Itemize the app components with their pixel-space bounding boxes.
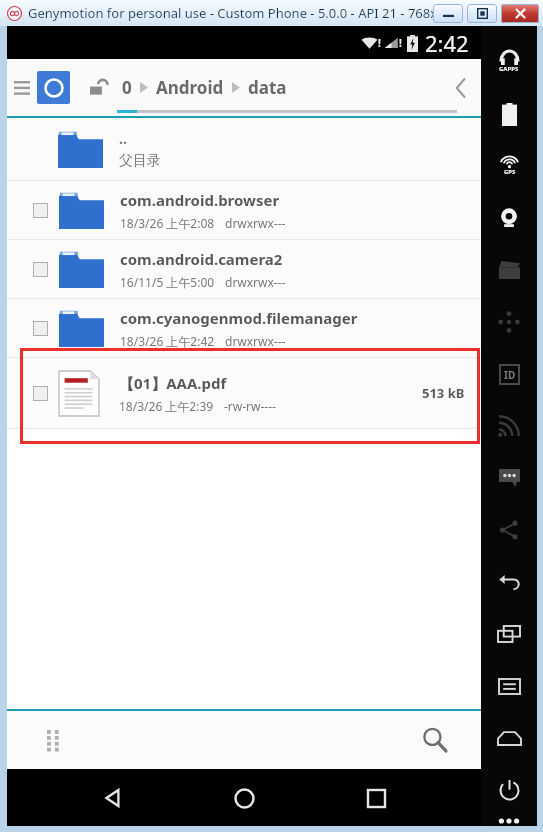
staticText: com.android.browser	[120, 190, 280, 210]
staticText: drwxrwx---	[225, 215, 286, 231]
button[interactable]: Back	[85, 771, 139, 825]
staticText: 18/3/26 上午2:39	[119, 398, 214, 414]
staticText: 18/3/26 上午2:08	[120, 215, 215, 231]
button[interactable]: Windows	[483, 608, 535, 660]
button[interactable]: Camera	[483, 192, 535, 244]
button[interactable]: Dpad	[483, 296, 535, 348]
button[interactable]: Recents	[349, 771, 403, 825]
button[interactable]: Minimize	[433, 4, 463, 23]
button[interactable]: Select com.cyanogenmod.filemanager	[7, 299, 481, 358]
button[interactable]: Reorder	[40, 727, 66, 753]
button[interactable]: GPS	[483, 140, 535, 192]
staticText: 513 kB	[422, 384, 465, 402]
staticText: 0	[122, 76, 132, 99]
button[interactable]: Select com.android.browser	[33, 203, 48, 218]
button[interactable]: Select com.cyanogenmod.filemanager	[33, 321, 48, 336]
staticText: -rw-rw----	[224, 398, 276, 414]
staticText: com.android.camera2	[120, 249, 283, 269]
staticText: Android	[156, 76, 224, 99]
staticText: drwxrwx---	[225, 333, 286, 349]
staticText: !	[378, 36, 381, 50]
button[interactable]: Disk	[483, 712, 535, 764]
staticText: GPS	[504, 168, 516, 176]
button[interactable]: Back	[483, 556, 535, 608]
button[interactable]: Select 【01】AAA.pdf	[7, 358, 481, 429]
staticText: !	[399, 36, 402, 50]
button[interactable]: GAPPS	[483, 36, 535, 88]
button[interactable]: Select com.android.camera2	[33, 262, 48, 277]
button[interactable]: App icon	[37, 71, 70, 104]
staticText: drwxrwx---	[225, 274, 286, 290]
button[interactable]: Menu	[7, 68, 37, 108]
button[interactable]: More	[483, 816, 535, 826]
button[interactable]: Share	[483, 504, 535, 556]
button[interactable]: Home	[217, 771, 271, 825]
staticText: 2:42	[425, 28, 469, 58]
staticText: 18/3/26 上午2:42	[120, 333, 215, 349]
staticText: ..	[119, 129, 127, 148]
staticText: 父目录	[119, 152, 161, 170]
staticText: ID	[504, 368, 516, 382]
staticText: com.cyanogenmod.filemanager	[120, 308, 358, 328]
button[interactable]: Identifiers	[483, 348, 535, 400]
button[interactable]: Messages	[483, 452, 535, 504]
button[interactable]: Search	[415, 720, 455, 760]
staticText: GAPPS	[499, 65, 519, 73]
staticText: 16/11/5 上午5:00	[120, 274, 215, 290]
button[interactable]: Maximize	[467, 4, 497, 23]
button[interactable]: Close	[501, 4, 539, 23]
staticText: data	[248, 76, 287, 99]
button[interactable]: Video	[483, 244, 535, 296]
button[interactable]: Battery	[483, 88, 535, 140]
button[interactable]: Select com.android.camera2	[7, 240, 481, 299]
staticText: 【01】AAA.pdf	[119, 373, 227, 393]
button[interactable]: Select 【01】AAA.pdf	[33, 386, 48, 401]
button[interactable]: Power	[483, 764, 535, 816]
staticText: Genymotion for personal use - Custom Pho…	[28, 4, 448, 22]
button[interactable]: Network	[483, 400, 535, 452]
button[interactable]: Back	[441, 68, 481, 108]
button[interactable]: ..	[7, 118, 481, 181]
button[interactable]: Unlock	[86, 75, 112, 101]
button[interactable]: Select com.android.browser	[7, 181, 481, 240]
button[interactable]: Keyboard	[483, 660, 535, 712]
